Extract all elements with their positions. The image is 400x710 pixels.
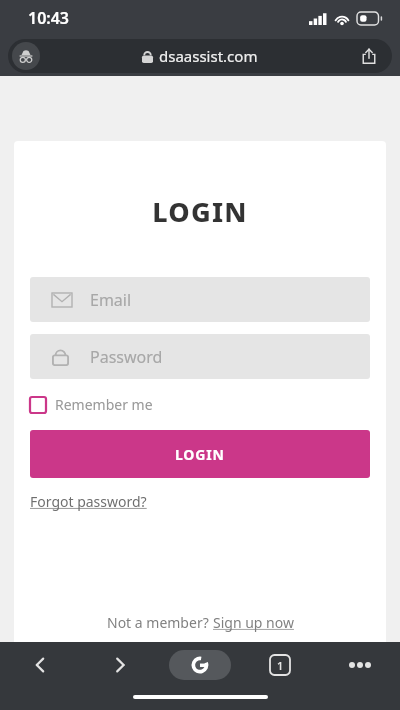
- button[interactable]: LOGIN: [30, 430, 370, 478]
- button[interactable]: Forgot password?: [30, 492, 147, 511]
- staticText: Sign up now: [213, 613, 294, 632]
- staticText: 10:43: [28, 7, 70, 29]
- staticText: Not a member?: [107, 613, 213, 632]
- button[interactable]: Share: [356, 43, 382, 69]
- button[interactable]: More options: [320, 642, 400, 688]
- staticText: Password: [90, 346, 163, 368]
- staticText: Forgot password?: [30, 492, 147, 511]
- button[interactable]: Incognito: [12, 42, 40, 70]
- staticText: LOGIN: [14, 193, 386, 230]
- button[interactable]: Forward: [80, 642, 160, 688]
- button[interactable]: Email: [30, 277, 370, 322]
- button[interactable]: Sign up now: [213, 613, 294, 632]
- button[interactable]: Password: [30, 334, 370, 379]
- button[interactable]: Tabs: [240, 642, 320, 688]
- button[interactable]: Back: [0, 642, 80, 688]
- staticText: dsaassist.com: [159, 46, 258, 66]
- staticText: Remember me: [55, 395, 153, 414]
- button[interactable]: Search: [169, 650, 231, 680]
- staticText: LOGIN: [175, 445, 225, 464]
- button[interactable]: Remember me: [30, 395, 153, 414]
- staticText: 1: [277, 658, 284, 673]
- staticText: Email: [90, 289, 132, 311]
